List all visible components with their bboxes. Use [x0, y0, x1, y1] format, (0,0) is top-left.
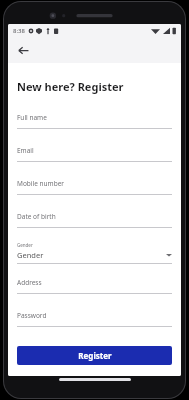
button[interactable]: Gender — [17, 242, 172, 264]
button[interactable]: Email — [17, 146, 172, 162]
staticText: Email — [17, 146, 34, 155]
staticText: New here? Register — [17, 79, 124, 94]
staticText: 8:38 — [13, 27, 25, 35]
staticText: Date of birth — [17, 212, 56, 221]
button[interactable]: Full name — [17, 113, 172, 129]
button[interactable]: Date of birth — [17, 212, 172, 228]
staticText: Register — [78, 350, 112, 361]
staticText: Address — [17, 278, 42, 287]
staticText: Mobile number — [17, 179, 64, 188]
staticText: Password — [17, 311, 47, 320]
staticText: Gender — [17, 250, 166, 260]
staticText: Full name — [17, 113, 47, 122]
staticText: Gender — [17, 242, 33, 248]
button[interactable]: Register — [17, 346, 172, 365]
button[interactable]: Address — [17, 278, 172, 294]
button[interactable]: Back — [14, 41, 32, 59]
other: Open gender dropdown — [166, 253, 172, 257]
button[interactable]: Mobile number — [17, 179, 172, 195]
button[interactable]: Password — [17, 311, 172, 327]
